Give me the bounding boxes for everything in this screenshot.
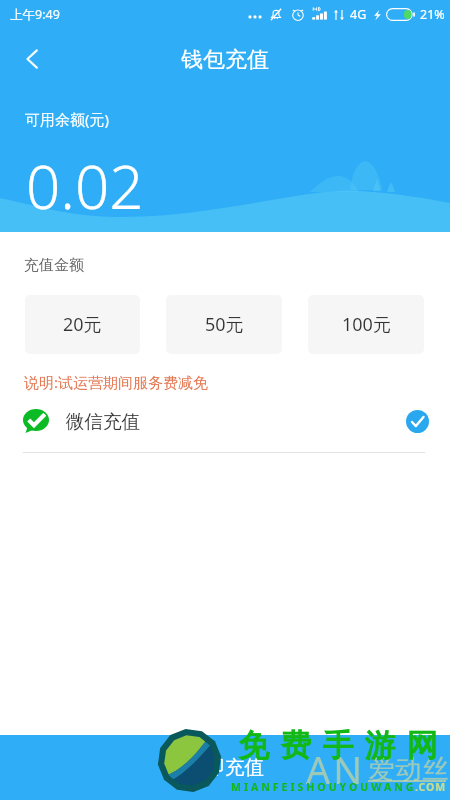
button[interactable]: 50元 [166, 295, 282, 354]
staticText: 说明:试运营期间服务费减免 [24, 372, 209, 392]
button[interactable]: 100元 [308, 295, 424, 354]
staticText: 21% [420, 6, 445, 23]
staticText: 免费手游网 [233, 726, 443, 765]
button[interactable]: 20元 [25, 295, 140, 354]
button[interactable]: 微信充值 [0, 399, 450, 443]
staticText: 上午9:49 [10, 6, 60, 23]
staticText: 0.02 [26, 145, 144, 227]
staticText: 钱包充值 [181, 46, 269, 74]
staticText: MIANFEISHOUYOUWANG [231, 780, 417, 794]
staticText: 立即充值 [186, 755, 264, 780]
staticText: AN [306, 743, 366, 795]
staticText: 4G [350, 6, 367, 23]
staticText: 微信充值 [66, 410, 140, 433]
staticText: .COM [415, 780, 447, 794]
staticText: 100元 [342, 312, 391, 337]
button[interactable]: 立即充值 [0, 735, 450, 800]
staticText: 20元 [63, 312, 102, 337]
staticText: 50元 [205, 312, 244, 337]
staticText: 爱动丝 [368, 753, 449, 786]
staticText: 可用余额(元) [25, 109, 110, 129]
staticText: 充值金额 [24, 256, 84, 275]
button[interactable]: Back [9, 36, 55, 82]
